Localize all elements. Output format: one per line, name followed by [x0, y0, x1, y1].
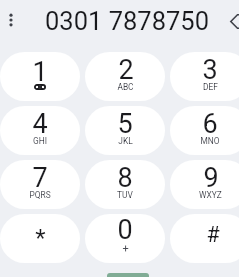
staticText: # [206, 222, 220, 247]
staticText: + [122, 242, 129, 255]
staticText: JKL [118, 136, 133, 146]
staticText: MNO [200, 136, 220, 146]
staticText: 2 [118, 54, 134, 86]
button[interactable]: 5 [85, 106, 165, 155]
staticText: DEF [203, 82, 218, 92]
staticText: 7 [32, 162, 48, 194]
staticText: 1 [32, 56, 48, 88]
staticText: PQRS [29, 190, 51, 200]
button[interactable]: * [0, 214, 80, 263]
staticText: 5 [117, 108, 133, 140]
button[interactable]: 1 [0, 52, 80, 101]
button[interactable]: 7 [0, 160, 80, 209]
button[interactable]: Call [107, 273, 149, 277]
staticText: 0 [117, 214, 133, 246]
staticText: GHI [33, 136, 47, 146]
staticText: * [35, 224, 46, 252]
button[interactable]: # [170, 214, 239, 263]
staticText: 3 [202, 54, 218, 86]
button[interactable]: 3 [170, 52, 239, 101]
button[interactable]: 2 [85, 52, 165, 101]
staticText: 0301 7878750 [45, 6, 209, 36]
staticText: 6 [202, 108, 218, 140]
staticText: ABC [117, 82, 134, 92]
staticText: WXYZ [199, 190, 222, 200]
button[interactable]: Backspace [230, 9, 239, 33]
button[interactable]: 6 [170, 106, 239, 155]
button[interactable]: 8 [85, 160, 165, 209]
staticText: 9 [203, 162, 219, 194]
staticText: 8 [117, 162, 133, 194]
button[interactable]: 4 [0, 106, 80, 155]
staticText: 4 [32, 108, 48, 140]
staticText: TUV [117, 190, 133, 200]
button[interactable]: 9 [170, 160, 239, 209]
button[interactable]: 0 [85, 214, 165, 263]
button[interactable]: More options [1, 10, 21, 30]
